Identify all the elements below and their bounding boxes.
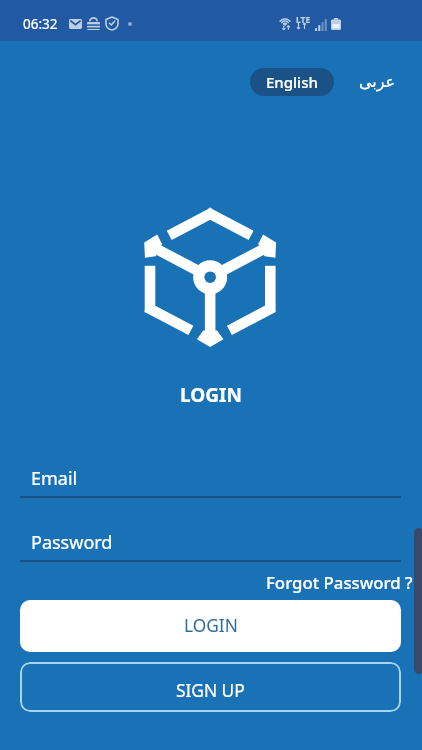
staticText: LOGIN [180, 382, 242, 408]
button[interactable]: عربى [354, 68, 400, 96]
staticText: Password [31, 530, 113, 555]
button[interactable]: LOGIN [20, 600, 401, 652]
button[interactable]: Email [20, 460, 401, 497]
button[interactable]: SIGN UP [20, 662, 401, 712]
staticText: Email [31, 466, 78, 491]
button[interactable]: Password [20, 524, 401, 561]
staticText: LTE [296, 14, 311, 26]
staticText: English [266, 72, 318, 92]
staticText: Forgot Password ? [266, 571, 413, 594]
other: App logo [140, 202, 280, 348]
staticText: SIGN UP [176, 679, 245, 703]
button[interactable]: Forgot Password ? [262, 569, 409, 595]
staticText: 06:32 [23, 15, 58, 33]
staticText: عربى [359, 72, 396, 91]
staticText: LOGIN [184, 614, 238, 638]
button[interactable]: English [250, 68, 334, 96]
